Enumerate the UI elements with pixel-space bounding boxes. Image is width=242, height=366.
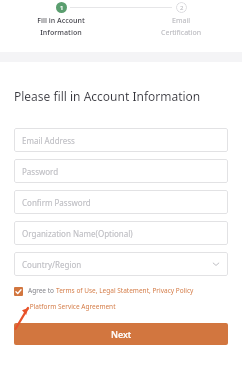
button[interactable]: Email Address <box>14 128 228 152</box>
button[interactable]: Organization Name(Optional) <box>14 221 228 245</box>
staticText: Confirm Password <box>22 197 91 208</box>
staticText: Terms of Use, Legal Statement, Privacy P… <box>56 286 194 295</box>
staticText: Organization Name(Optional) <box>22 228 133 239</box>
staticText: Fill in Account Information <box>37 16 85 37</box>
staticText: 1 <box>60 4 64 12</box>
button[interactable]: Confirm Password <box>14 190 228 214</box>
button[interactable]: Next <box>14 323 228 345</box>
staticText: Email Address <box>22 135 75 146</box>
staticText: Please fill in Account Information <box>14 88 201 104</box>
staticText: Password <box>22 166 59 177</box>
button[interactable]: Agree to terms checkbox <box>14 287 23 296</box>
button[interactable]: Password <box>14 159 228 183</box>
button[interactable]: Country/Region <box>14 252 228 276</box>
button[interactable]: 2 <box>126 2 236 37</box>
staticText: Agree to <box>28 286 56 295</box>
staticText: 2 <box>180 4 184 12</box>
staticText: Next <box>111 328 132 340</box>
staticText: Email Certification <box>161 16 201 37</box>
staticText: ,Platform Service Agreement <box>28 302 116 311</box>
staticText: Country/Region <box>22 259 82 270</box>
button[interactable]: 1 <box>6 2 116 37</box>
button[interactable]: Agree to <box>28 286 194 311</box>
